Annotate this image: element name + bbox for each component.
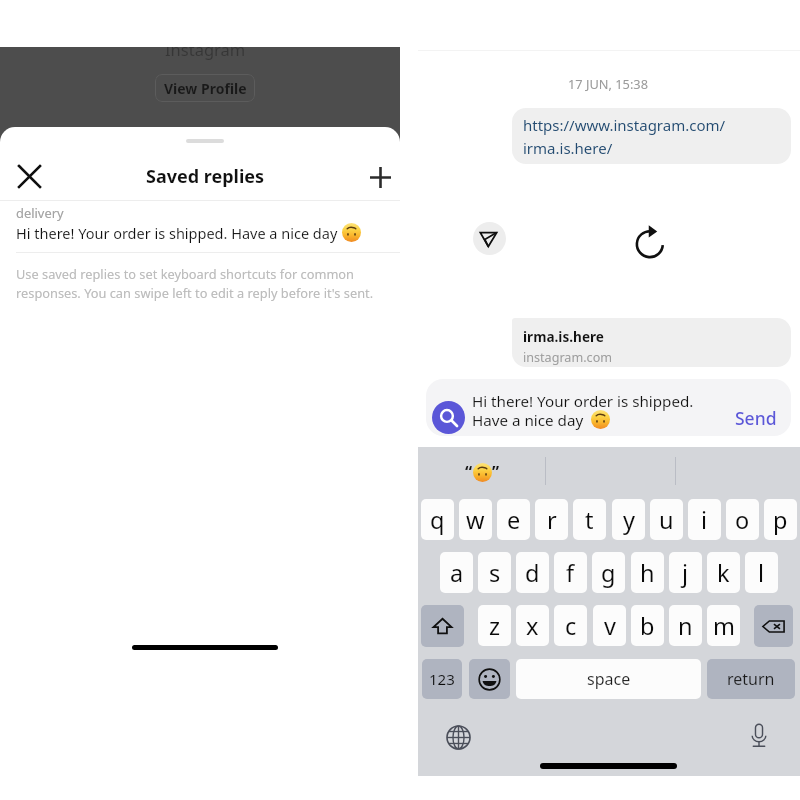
button[interactable]: d [516,552,549,593]
staticText: 17 JUN, 15:38 [568,75,649,92]
staticText: instagram.com [523,349,613,366]
button[interactable]: h [631,552,664,593]
staticText: l [758,557,765,589]
button[interactable]: k [707,552,740,593]
staticText: s [489,557,501,589]
staticText: j [682,557,689,589]
button[interactable]: b [631,605,664,646]
button[interactable]: p [764,499,797,540]
button[interactable]: irma.is.here [512,318,791,367]
staticText: t [585,504,594,536]
button[interactable]: o [726,499,759,540]
button[interactable]: space [516,659,701,699]
staticText: Use saved replies to set keyboard shortc… [16,265,390,302]
staticText: Instagram [165,47,246,60]
staticText: View Profile [164,79,247,98]
staticText: https://www.instagram.com/ irma.is.here/ [523,115,726,158]
button[interactable]: v [593,605,626,646]
button[interactable]: i [688,499,721,540]
button[interactable]: Change keyboard [445,724,472,751]
button[interactable]: c [554,605,587,646]
staticText: x [526,610,539,642]
staticText: h [640,557,655,589]
staticText: o [735,504,750,536]
button[interactable]: View Profile [155,74,255,102]
staticText: Saved replies [146,164,265,189]
button[interactable]: t [573,499,606,540]
button[interactable]: g [592,552,625,593]
staticText: “ [465,461,473,483]
button[interactable]: Dictate [745,722,772,749]
staticText: i [701,504,708,536]
staticText: d [525,557,540,589]
button[interactable]: l [745,552,778,593]
button[interactable]: w [459,499,492,540]
button[interactable]: a [440,552,473,593]
button[interactable]: r [535,499,568,540]
staticText: k [717,557,730,589]
staticText: n [678,610,693,642]
button[interactable]: Add saved reply [370,167,391,188]
staticText: w [466,504,485,536]
button[interactable]: q [421,499,454,540]
button[interactable]: https://www.instagram.com/ irma.is.here/ [512,108,791,164]
button[interactable]: Backspace [754,605,793,647]
button[interactable]: Retry [632,222,672,262]
staticText: Hi there! Your order is shipped. Have a … [16,223,342,243]
button[interactable]: Send message [473,222,506,255]
staticText: b [640,610,655,642]
button[interactable]: delivery [0,201,400,243]
staticText: space [587,668,631,690]
staticText: y [623,504,635,536]
staticText: e [507,504,521,536]
staticText: return [727,668,775,690]
staticText: irma.is.here [523,327,604,346]
button[interactable]: x [516,605,549,646]
staticText: c [565,610,577,642]
button[interactable]: Hi there! Your order is shipped. [426,379,791,436]
button[interactable]: return [707,659,795,699]
staticText: f [566,557,575,589]
staticText: v [604,610,616,642]
staticText: u [659,504,674,536]
staticText: Have a nice day [472,410,588,431]
staticText: z [489,610,501,642]
button[interactable]: z [478,605,511,646]
staticText: Hi there! Your order is shipped. [472,391,694,412]
staticText: g [601,557,616,589]
button[interactable]: n [669,605,702,646]
button[interactable]: f [554,552,587,593]
staticText: a [450,557,464,589]
button[interactable]: y [612,499,645,540]
button[interactable]: Emoji [469,659,510,699]
staticText: ” [492,461,500,483]
staticText: Send [735,406,777,430]
staticText: r [547,504,557,536]
staticText: 123 [429,669,455,689]
button[interactable]: j [669,552,702,593]
button[interactable]: s [478,552,511,593]
staticText: p [773,504,788,536]
button[interactable]: Shift [421,605,464,647]
button[interactable]: e [497,499,530,540]
button[interactable]: 123 [422,659,462,699]
button[interactable]: Close [19,166,40,187]
staticText: delivery [16,204,64,222]
button[interactable]: Send [735,406,777,430]
staticText: q [430,504,445,536]
staticText: m [713,610,735,642]
button[interactable]: m [707,605,740,646]
button[interactable]: u [650,499,683,540]
